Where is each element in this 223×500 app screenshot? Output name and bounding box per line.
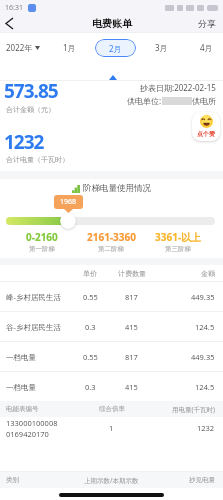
staticText: 合计电量（千瓦时） [6, 155, 69, 164]
staticText: 一档电量 [6, 383, 36, 392]
staticText: 3361-以上 [155, 230, 202, 244]
staticText: 817 [125, 292, 138, 302]
staticText: 16:31 [5, 3, 23, 13]
button[interactable]: 一档电量 [0, 342, 223, 371]
button[interactable]: 3月 [147, 33, 175, 62]
staticText: 0.3 [85, 322, 96, 332]
staticText: 计费数量 [118, 269, 146, 278]
staticText: 抄表日期:2022-02-15 [140, 82, 216, 93]
staticText: 0.55 [83, 352, 98, 362]
button[interactable]: 谷-乡村居民生活 [0, 312, 223, 341]
staticText: 124.5 [195, 382, 215, 392]
staticText: 电能表编号 [6, 405, 39, 413]
staticText: 1月 [63, 42, 76, 53]
staticText: 0169420170 [6, 429, 49, 439]
staticText: 第一阶梯 [29, 245, 55, 253]
staticText: 谷-乡村居民生活 [6, 322, 61, 332]
staticText: 124.5 [195, 322, 215, 332]
staticText: 1 [109, 423, 114, 433]
button[interactable]: 2月 [95, 39, 136, 57]
staticText: 阶梯电量使用情况 [83, 183, 151, 194]
staticText: 综合倍率 [99, 405, 125, 413]
staticText: 用电量(千瓦时) [172, 405, 215, 414]
staticText: 415 [125, 382, 138, 392]
button[interactable]: 峰-乡村居民生活 [0, 282, 223, 311]
button[interactable]: 点个赞 [192, 112, 220, 141]
staticText: 4月 [200, 42, 213, 53]
staticText: 1968 [60, 197, 77, 207]
staticText: 0-2160 [26, 230, 58, 244]
staticText: 点个赞 [197, 130, 215, 138]
staticText: 133000100008 [6, 418, 58, 428]
staticText: 第三阶梯 [165, 245, 191, 253]
staticText: 抄见电量 [189, 476, 215, 484]
staticText: 0.55 [83, 292, 98, 302]
staticText: 1232 [197, 423, 215, 433]
staticText: 415 [125, 322, 138, 332]
staticText: 供电所 [192, 96, 216, 106]
staticText: 峰-乡村居民生活 [6, 292, 61, 302]
staticText: 合计金额（元） [6, 105, 55, 114]
staticText: 817 [125, 352, 138, 362]
staticText: 第二阶梯 [98, 245, 124, 253]
staticText: 电费账单 [92, 17, 132, 30]
staticText: 分享 [198, 18, 216, 29]
staticText: 一档电量 [6, 353, 36, 362]
staticText: 供电单位: [127, 95, 162, 106]
staticText: 573.85 [4, 78, 58, 104]
staticText: 1232 [4, 129, 44, 155]
staticText: 2月 [109, 43, 122, 54]
staticText: 3月 [155, 42, 168, 53]
staticText: 2022年 [6, 42, 33, 53]
staticText: 449.35 [191, 292, 215, 302]
button[interactable] [0, 15, 18, 32]
staticText: 449.35 [191, 352, 215, 362]
button[interactable]: 一档电量 [0, 372, 223, 401]
staticText: 单价 [83, 269, 97, 278]
button[interactable]: 2022年 [6, 42, 40, 53]
button[interactable]: 1月 [55, 33, 83, 62]
staticText: 类别 [6, 476, 19, 484]
staticText: 2161-3360 [87, 230, 136, 244]
staticText: 金额 [201, 269, 215, 278]
button[interactable]: 分享 [198, 18, 223, 29]
button[interactable]: 4月 [192, 33, 220, 62]
staticText: 0.3 [85, 382, 96, 392]
staticText: 上期示数/本期示数 [84, 476, 139, 485]
